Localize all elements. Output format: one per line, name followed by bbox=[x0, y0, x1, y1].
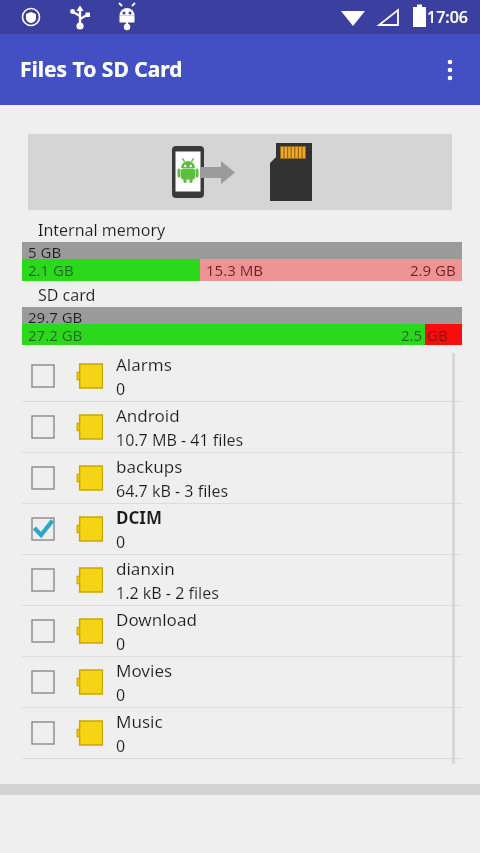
button[interactable]: Copy files to SD card bbox=[28, 134, 452, 210]
button[interactable]: Select Android bbox=[30, 414, 56, 440]
staticText: DCIM bbox=[116, 506, 163, 529]
staticText: 1.2 kB - 2 files bbox=[116, 582, 219, 604]
staticText: Movies bbox=[116, 659, 173, 682]
staticText: 0 bbox=[116, 735, 126, 757]
button[interactable]: Select backups bbox=[30, 465, 56, 491]
button[interactable]: Select dianxin bbox=[30, 567, 56, 593]
staticText: Music bbox=[116, 710, 163, 733]
staticText: Internal memory bbox=[38, 219, 166, 241]
button[interactable]: Select Android bbox=[0, 402, 480, 452]
staticText: 0 bbox=[116, 378, 126, 400]
staticText: 0 bbox=[116, 633, 126, 655]
staticText: GB bbox=[427, 325, 448, 345]
staticText: 15.3 MB bbox=[206, 260, 264, 280]
button[interactable]: Select Download bbox=[30, 618, 56, 644]
staticText: 0 bbox=[116, 684, 126, 706]
button[interactable]: Select Music bbox=[0, 708, 480, 758]
staticText: Alarms bbox=[116, 353, 172, 376]
button[interactable]: Select Movies bbox=[0, 657, 480, 707]
staticText: dianxin bbox=[116, 557, 175, 580]
staticText: 0 bbox=[116, 531, 126, 553]
staticText: 29.7 GB bbox=[28, 307, 83, 324]
staticText: 2.1 GB bbox=[28, 260, 74, 280]
staticText: 64.7 kB - 3 files bbox=[116, 480, 229, 502]
staticText: 2.9 GB bbox=[410, 260, 456, 280]
button[interactable]: Select Alarms bbox=[30, 363, 56, 389]
staticText: 17:06 bbox=[427, 6, 468, 28]
button[interactable]: Select Download bbox=[0, 606, 480, 656]
button[interactable]: Select Movies bbox=[30, 669, 56, 695]
button[interactable]: Selected DCIM bbox=[0, 504, 480, 554]
staticText: 5 GB bbox=[28, 242, 62, 259]
button[interactable]: Select Alarms bbox=[0, 351, 480, 401]
button[interactable]: Select dianxin bbox=[0, 555, 480, 605]
staticText: backups bbox=[116, 455, 183, 478]
staticText: Files To SD Card bbox=[20, 55, 183, 84]
button[interactable]: Select Music bbox=[30, 720, 56, 746]
button[interactable]: Select backups bbox=[0, 453, 480, 503]
staticText: 2.5 bbox=[401, 325, 423, 345]
staticText: SD card bbox=[38, 284, 96, 306]
staticText: 10.7 MB - 41 files bbox=[116, 429, 244, 451]
staticText: Android bbox=[116, 404, 180, 427]
staticText: 27.2 GB bbox=[28, 325, 83, 345]
staticText: Download bbox=[116, 608, 197, 631]
button[interactable]: Selected DCIM bbox=[30, 516, 56, 542]
button[interactable]: More options bbox=[426, 46, 474, 94]
